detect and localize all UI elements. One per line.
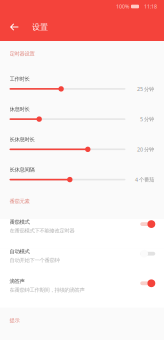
staticText: 定时器设置	[9, 50, 34, 57]
staticText: 工作时长	[9, 76, 29, 82]
button[interactable]: 长休息间隔	[0, 159, 164, 189]
staticText: 在番茄钟工作期间，持续的滴答声	[9, 287, 84, 293]
button[interactable]: 工作时长	[0, 68, 164, 98]
button[interactable]: 休息时长	[0, 98, 164, 128]
button[interactable]: 滴答声	[0, 278, 164, 308]
button[interactable]: 番茄模式	[0, 219, 164, 248]
staticText: 番茄元素	[9, 198, 29, 204]
button[interactable]: Back	[6, 15, 23, 39]
staticText: 11:18	[144, 3, 157, 10]
staticText: 休息时长	[9, 106, 29, 113]
staticText: 长休息间隔	[9, 166, 34, 173]
staticText: 25 分钟	[137, 85, 154, 92]
staticText: 长休息时长	[9, 136, 34, 143]
button[interactable]: 自动模式	[0, 248, 164, 278]
staticText: 番茄模式	[9, 219, 29, 225]
staticText: 100%	[116, 3, 129, 10]
staticText: 设置	[32, 22, 48, 32]
staticText: 4 个番茄	[135, 176, 154, 183]
staticText: 5 分钟	[140, 116, 154, 123]
staticText: 提示	[9, 317, 19, 324]
staticText: 20 分钟	[137, 146, 154, 153]
staticText: 滴答声	[9, 278, 24, 284]
staticText: 自动模式	[9, 248, 29, 255]
staticText: 自动开始下一个番茄钟	[9, 257, 59, 264]
staticText: 在番茄模式下不能修改定时器	[9, 227, 74, 234]
button[interactable]: 长休息时长	[0, 128, 164, 159]
